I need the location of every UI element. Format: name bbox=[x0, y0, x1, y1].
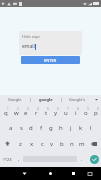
button[interactable]: k bbox=[76, 120, 86, 136]
staticText: j bbox=[70, 124, 72, 132]
button[interactable]: Switch keyboard bbox=[83, 167, 97, 180]
staticText: Google bbox=[8, 97, 22, 102]
staticText: g bbox=[49, 124, 53, 132]
button[interactable]: c bbox=[37, 136, 47, 151]
staticText: q bbox=[4, 109, 8, 117]
button[interactable]: s bbox=[16, 120, 26, 136]
staticText: n bbox=[70, 140, 74, 148]
staticText: 6 bbox=[57, 107, 59, 111]
button[interactable]: l bbox=[86, 120, 96, 136]
button[interactable]: a bbox=[5, 120, 16, 136]
button[interactable]: j bbox=[66, 120, 76, 136]
staticText: Google's bbox=[69, 97, 86, 102]
button[interactable]: d bbox=[26, 120, 36, 136]
staticText: a bbox=[9, 124, 13, 132]
button[interactable]: w bbox=[11, 104, 21, 120]
button[interactable]: More suggestions bbox=[92, 95, 101, 104]
staticText: y bbox=[54, 109, 58, 117]
staticText: t bbox=[45, 109, 48, 117]
staticText: o bbox=[84, 109, 88, 117]
button[interactable]: f bbox=[36, 120, 46, 136]
button[interactable]: google bbox=[31, 95, 61, 104]
staticText: ENTER bbox=[44, 58, 57, 63]
button[interactable]: Period bbox=[77, 151, 87, 167]
button[interactable]: p bbox=[91, 104, 101, 120]
staticText: p bbox=[94, 109, 98, 117]
staticText: u bbox=[64, 109, 68, 117]
staticText: 2 bbox=[17, 107, 19, 111]
staticText: e bbox=[24, 109, 28, 117]
button[interactable]: i bbox=[71, 104, 81, 120]
staticText: 3 bbox=[27, 107, 29, 111]
button[interactable]: Backspace bbox=[87, 136, 101, 151]
button[interactable]: e bbox=[21, 104, 31, 120]
staticText: c bbox=[41, 140, 44, 148]
staticText: z bbox=[19, 140, 22, 148]
staticText: 9 bbox=[87, 107, 89, 111]
staticText: h bbox=[59, 124, 63, 132]
button[interactable]: Home bbox=[43, 167, 57, 180]
button[interactable]: o bbox=[81, 104, 91, 120]
staticText: s bbox=[20, 124, 23, 132]
button[interactable]: n bbox=[67, 136, 77, 151]
button[interactable]: x bbox=[26, 136, 37, 151]
button[interactable]: Google bbox=[0, 95, 30, 104]
button[interactable]: Comma bbox=[14, 151, 23, 167]
staticText: . bbox=[81, 156, 83, 163]
button[interactable]: z bbox=[15, 136, 26, 151]
button[interactable]: r bbox=[31, 104, 41, 120]
staticText: , bbox=[18, 156, 20, 163]
button[interactable]: g bbox=[46, 120, 56, 136]
button[interactable]: v bbox=[47, 136, 57, 151]
staticText: l bbox=[90, 124, 92, 132]
button[interactable]: m bbox=[77, 136, 87, 151]
button[interactable]: Enter bbox=[87, 151, 101, 167]
button[interactable]: u bbox=[61, 104, 71, 120]
staticText: w bbox=[14, 109, 19, 117]
staticText: 7 bbox=[67, 107, 69, 111]
staticText: Hide expr bbox=[22, 34, 41, 39]
staticText: b bbox=[60, 140, 64, 148]
staticText: m bbox=[79, 140, 85, 148]
staticText: x bbox=[30, 140, 34, 148]
staticText: 0 bbox=[97, 107, 99, 111]
button[interactable]: Google's bbox=[62, 95, 92, 104]
button[interactable]: Recents bbox=[66, 167, 80, 180]
button[interactable]: q bbox=[0, 104, 11, 120]
staticText: 8 bbox=[77, 107, 79, 111]
button[interactable]: Back bbox=[17, 167, 31, 180]
staticText: d bbox=[29, 124, 33, 132]
button[interactable]: y bbox=[51, 104, 61, 120]
staticText: email bbox=[22, 43, 35, 50]
staticText: 4 bbox=[37, 107, 39, 111]
button[interactable]: t bbox=[41, 104, 51, 120]
staticText: k bbox=[79, 124, 83, 132]
staticText: 5 bbox=[47, 107, 49, 111]
staticText: v bbox=[50, 140, 54, 148]
button[interactable]: ENTER bbox=[21, 56, 80, 64]
staticText: ?123 bbox=[3, 157, 12, 162]
staticText: i bbox=[75, 109, 77, 117]
button[interactable]: b bbox=[57, 136, 67, 151]
staticText: 1 bbox=[7, 107, 9, 111]
staticText: r bbox=[35, 109, 38, 117]
button[interactable]: h bbox=[56, 120, 66, 136]
staticText: f bbox=[40, 124, 43, 132]
button[interactable]: Shift bbox=[0, 136, 15, 151]
button[interactable]: Symbols bbox=[0, 151, 14, 167]
staticText: google bbox=[39, 97, 53, 102]
